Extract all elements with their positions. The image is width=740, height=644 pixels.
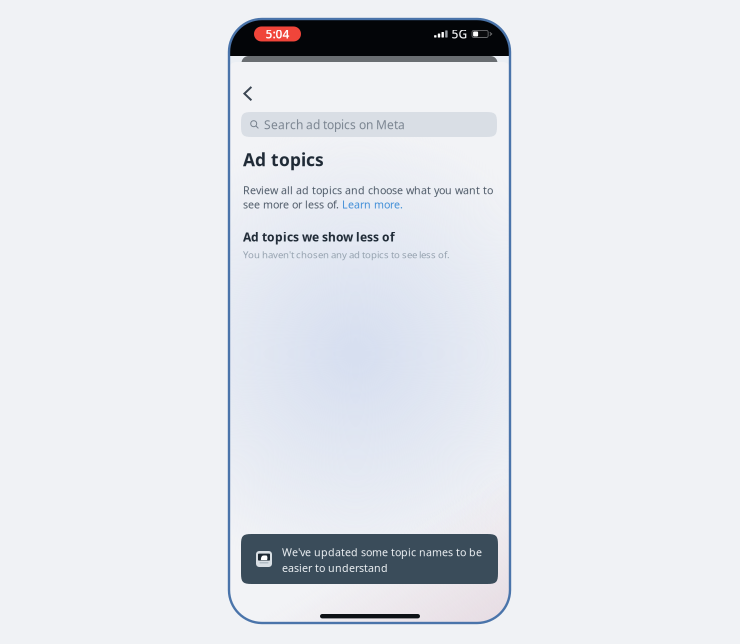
staticText: You haven't chosen any ad topics to see …: [243, 248, 450, 261]
staticText: Review all ad topics and choose what you…: [243, 183, 493, 197]
staticText: Search ad topics on Meta: [264, 116, 405, 132]
staticText: 5G: [452, 26, 468, 42]
staticText: see more or less of.: [243, 197, 342, 211]
staticText: We've updated some topic names to be: [282, 545, 482, 559]
staticText: 5:04: [265, 26, 289, 42]
staticText: Ad topics: [243, 148, 324, 171]
staticText: Ad topics we show less of: [243, 229, 395, 245]
staticText: easier to understand: [282, 561, 388, 575]
button[interactable]: Search ad topics on Meta: [241, 112, 497, 137]
button[interactable]: Back: [234, 78, 265, 109]
staticText: Learn more.: [342, 197, 403, 211]
button[interactable]: Learn more.: [342, 197, 403, 211]
